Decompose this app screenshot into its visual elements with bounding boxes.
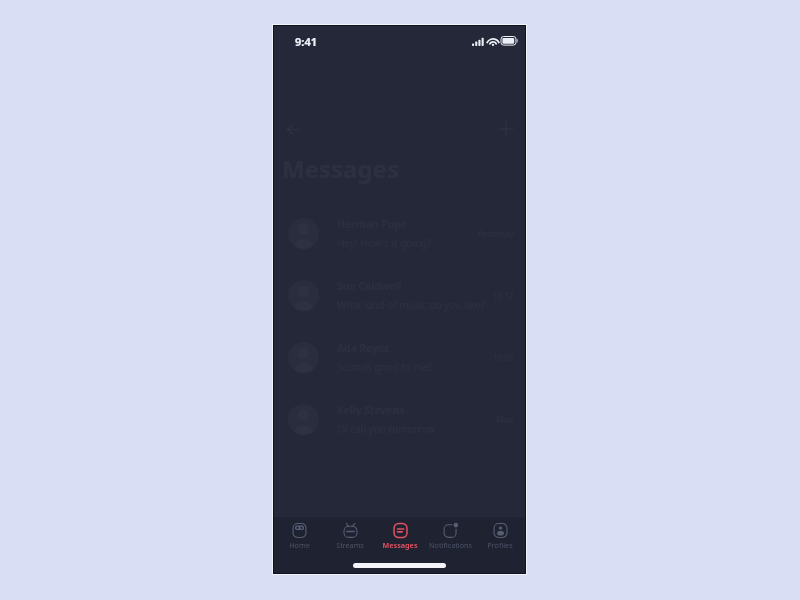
staticText: Notifications [429, 540, 472, 550]
button[interactable]: Messages [375, 523, 425, 550]
staticText: Profiles [487, 540, 513, 550]
button[interactable]: Streams [325, 523, 375, 550]
button[interactable]: Profiles [475, 523, 525, 550]
staticText: Messages [382, 540, 418, 550]
staticText: Streams [336, 540, 364, 550]
staticText: 9:41 [295, 34, 317, 49]
staticText: Home [289, 540, 310, 550]
button[interactable]: Notifications [425, 523, 475, 550]
staticText: Messages [282, 152, 399, 185]
button[interactable]: Home [274, 523, 325, 550]
